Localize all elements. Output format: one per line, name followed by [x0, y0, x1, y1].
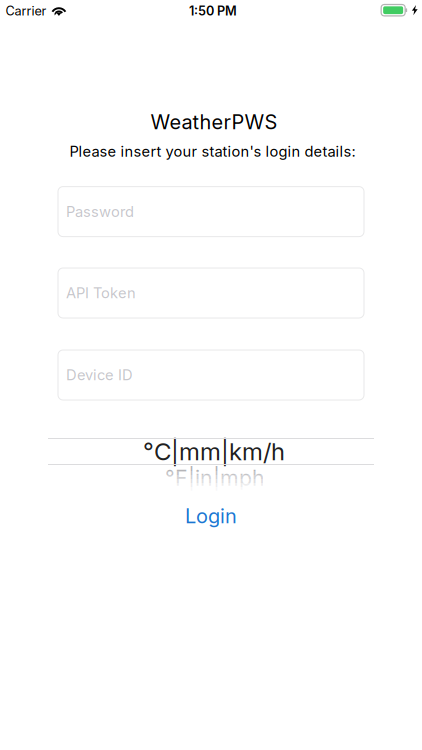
staticText: Please insert your station's login detai… — [69, 143, 355, 160]
staticText: 1:50 PM — [189, 3, 237, 19]
staticText: Device ID — [66, 366, 133, 384]
staticText: °F|in|mph — [165, 465, 265, 491]
staticText: °F|in|mph — [165, 465, 265, 491]
staticText: °F|in|mph — [165, 465, 265, 491]
staticText: °C|mm|km/h — [143, 437, 285, 466]
button[interactable]: Device ID — [58, 350, 364, 400]
button[interactable]: Login — [166, 503, 256, 529]
staticText: °F|in|mph — [165, 465, 265, 491]
staticText: Login — [185, 504, 237, 528]
button[interactable]: °C|mm|km/h — [0, 432, 422, 494]
staticText: API Token — [66, 284, 136, 302]
staticText: WeatherPWS — [150, 110, 277, 134]
staticText: Carrier — [6, 3, 47, 19]
button[interactable]: API Token — [58, 268, 364, 318]
staticText: Password — [66, 203, 134, 220]
staticText: °F|in|mph — [165, 465, 265, 491]
button[interactable]: Password — [58, 187, 364, 237]
staticText: °F|in|mph — [165, 465, 265, 491]
